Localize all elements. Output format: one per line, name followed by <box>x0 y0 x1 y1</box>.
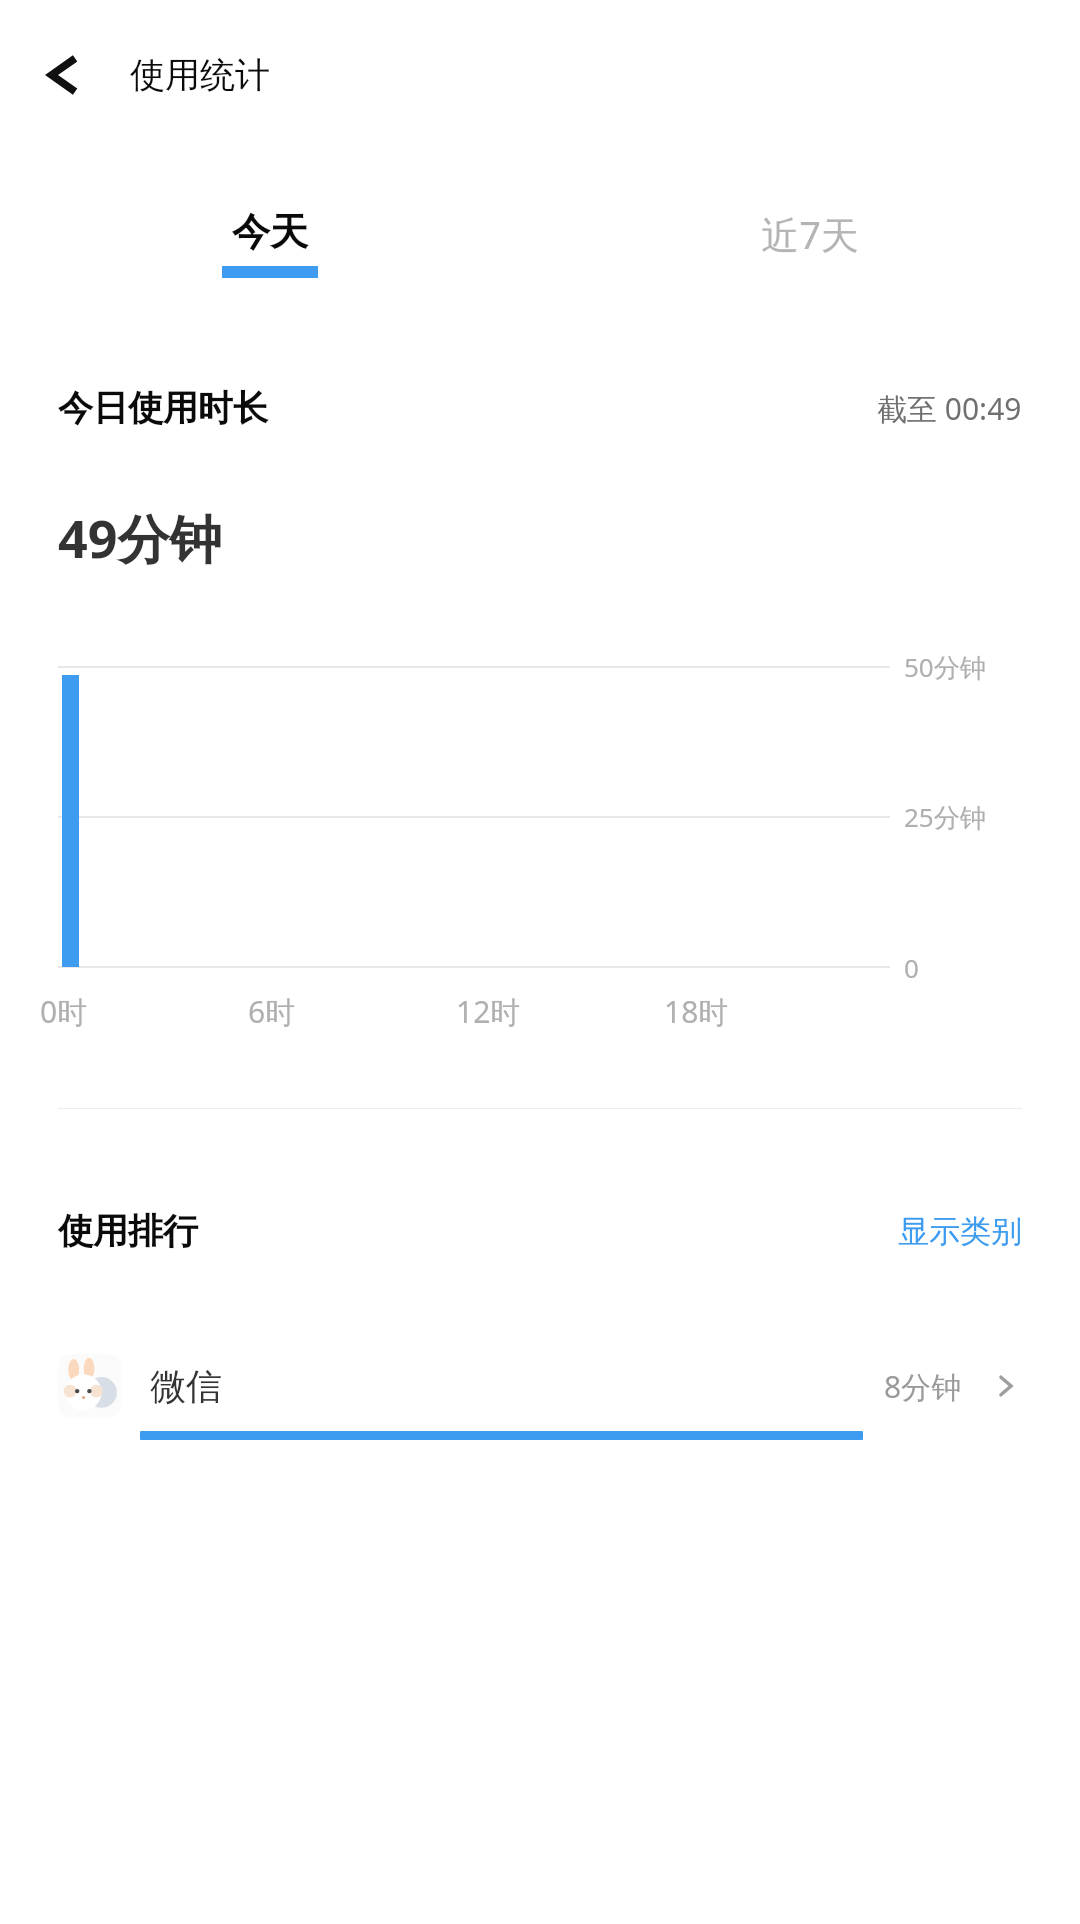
staticText: 25分钟 <box>904 799 986 835</box>
button[interactable]: 微信 <box>0 1341 1080 1440</box>
staticText: 截至 00:49 <box>877 388 1022 429</box>
staticText: 近7天 <box>761 208 859 260</box>
button[interactable]: 近7天 <box>540 208 1080 282</box>
staticText: 12时 <box>456 991 521 1032</box>
staticText: 50分钟 <box>904 649 986 685</box>
staticText: 8分钟 <box>884 1366 962 1407</box>
staticText: 显示类别 <box>898 1212 1022 1251</box>
staticText: 微信 <box>150 1364 222 1409</box>
staticText: 6时 <box>248 991 296 1032</box>
button[interactable]: 今天 <box>0 208 540 278</box>
staticText: 49分钟 <box>58 502 222 573</box>
other: Details <box>988 1369 1022 1403</box>
button[interactable]: 显示类别 <box>898 1212 1022 1251</box>
staticText: 今天 <box>232 208 308 256</box>
staticText: 使用排行 <box>58 1209 198 1253</box>
staticText: 0 <box>904 950 919 985</box>
staticText: 使用统计 <box>130 53 270 97</box>
staticText: 0时 <box>40 991 88 1032</box>
staticText: 今日使用时长 <box>58 386 268 430</box>
button[interactable]: Back <box>18 39 90 111</box>
staticText: 18时 <box>664 991 729 1032</box>
